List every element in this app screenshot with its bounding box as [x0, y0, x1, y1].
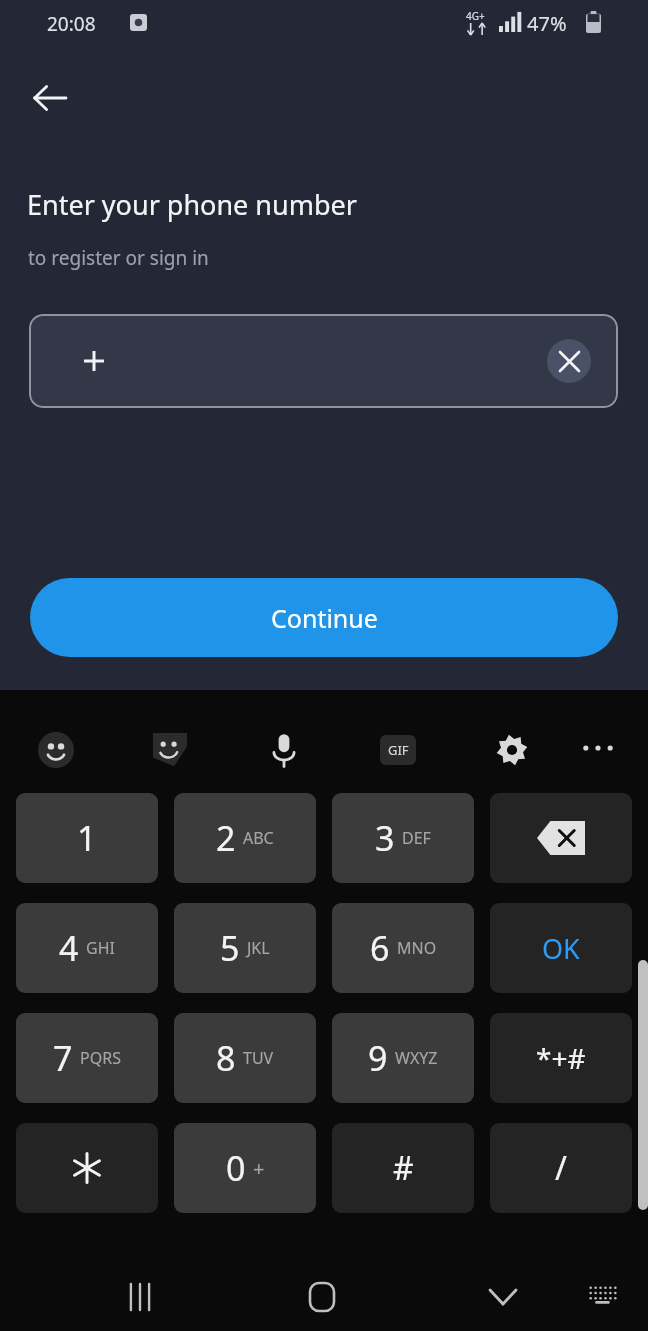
staticText: *+#	[536, 1039, 586, 1077]
staticText: OK	[542, 930, 580, 967]
button[interactable]: Recent apps	[110, 1267, 170, 1327]
button[interactable]: More options	[570, 720, 626, 776]
staticText: GIF	[388, 741, 409, 759]
button[interactable]: /	[490, 1123, 632, 1213]
staticText: 0	[226, 1145, 246, 1191]
staticText: TUV	[243, 1047, 274, 1069]
staticText: 7	[53, 1035, 73, 1081]
button[interactable]: Stickers	[140, 720, 200, 780]
button[interactable]: Backspace	[490, 793, 632, 883]
staticText: 9	[368, 1035, 388, 1081]
button[interactable]: 0	[174, 1123, 316, 1213]
button[interactable]: Clear	[29, 314, 618, 408]
staticText: 1	[77, 815, 97, 861]
staticText: 4G+	[466, 9, 485, 23]
staticText: 20:08	[47, 11, 96, 37]
staticText: 5	[220, 925, 240, 971]
button[interactable]: #	[332, 1123, 474, 1213]
button[interactable]: Voice input	[254, 720, 314, 780]
staticText: ABC	[243, 827, 274, 849]
staticText: 2	[216, 815, 236, 861]
button[interactable]: 3	[332, 793, 474, 883]
staticText: +	[253, 1155, 265, 1182]
staticText: 3	[375, 815, 395, 861]
button[interactable]: Change keyboard	[575, 1267, 631, 1323]
button[interactable]: Hide keyboard	[473, 1267, 533, 1327]
button[interactable]: Clear	[547, 339, 591, 383]
button[interactable]: 4	[16, 903, 158, 993]
button[interactable]: *+#	[490, 1013, 632, 1103]
staticText: #	[393, 1146, 414, 1190]
staticText: 47%	[527, 10, 567, 37]
button[interactable]: OK	[490, 903, 632, 993]
button[interactable]: 7	[16, 1013, 158, 1103]
button[interactable]: 1	[16, 793, 158, 883]
staticText: Continue	[271, 601, 378, 635]
button[interactable]: 9	[332, 1013, 474, 1103]
staticText: 8	[216, 1035, 236, 1081]
staticText: JKL	[247, 937, 270, 959]
button[interactable]: 2	[174, 793, 316, 883]
staticText: Enter your phone number	[27, 186, 357, 223]
staticText: 6	[370, 925, 390, 971]
staticText: DEF	[402, 827, 431, 849]
button[interactable]: 6	[332, 903, 474, 993]
button[interactable]: GIF	[368, 720, 428, 780]
staticText: GHI	[86, 937, 115, 959]
button[interactable]: Home	[292, 1267, 352, 1327]
button[interactable]	[16, 1123, 158, 1213]
button[interactable]: 5	[174, 903, 316, 993]
staticText: 4	[59, 925, 79, 971]
staticText: /	[555, 1146, 567, 1190]
button[interactable]: Back	[20, 68, 80, 128]
staticText: WXYZ	[395, 1047, 438, 1069]
button[interactable]: Emoji	[26, 720, 86, 780]
button[interactable]: 8	[174, 1013, 316, 1103]
button[interactable]: Settings	[482, 720, 542, 780]
staticText: MNO	[397, 937, 437, 959]
staticText: PQRS	[80, 1047, 121, 1069]
staticText: to register or sign in	[28, 245, 209, 271]
button[interactable]: Continue	[30, 578, 618, 657]
